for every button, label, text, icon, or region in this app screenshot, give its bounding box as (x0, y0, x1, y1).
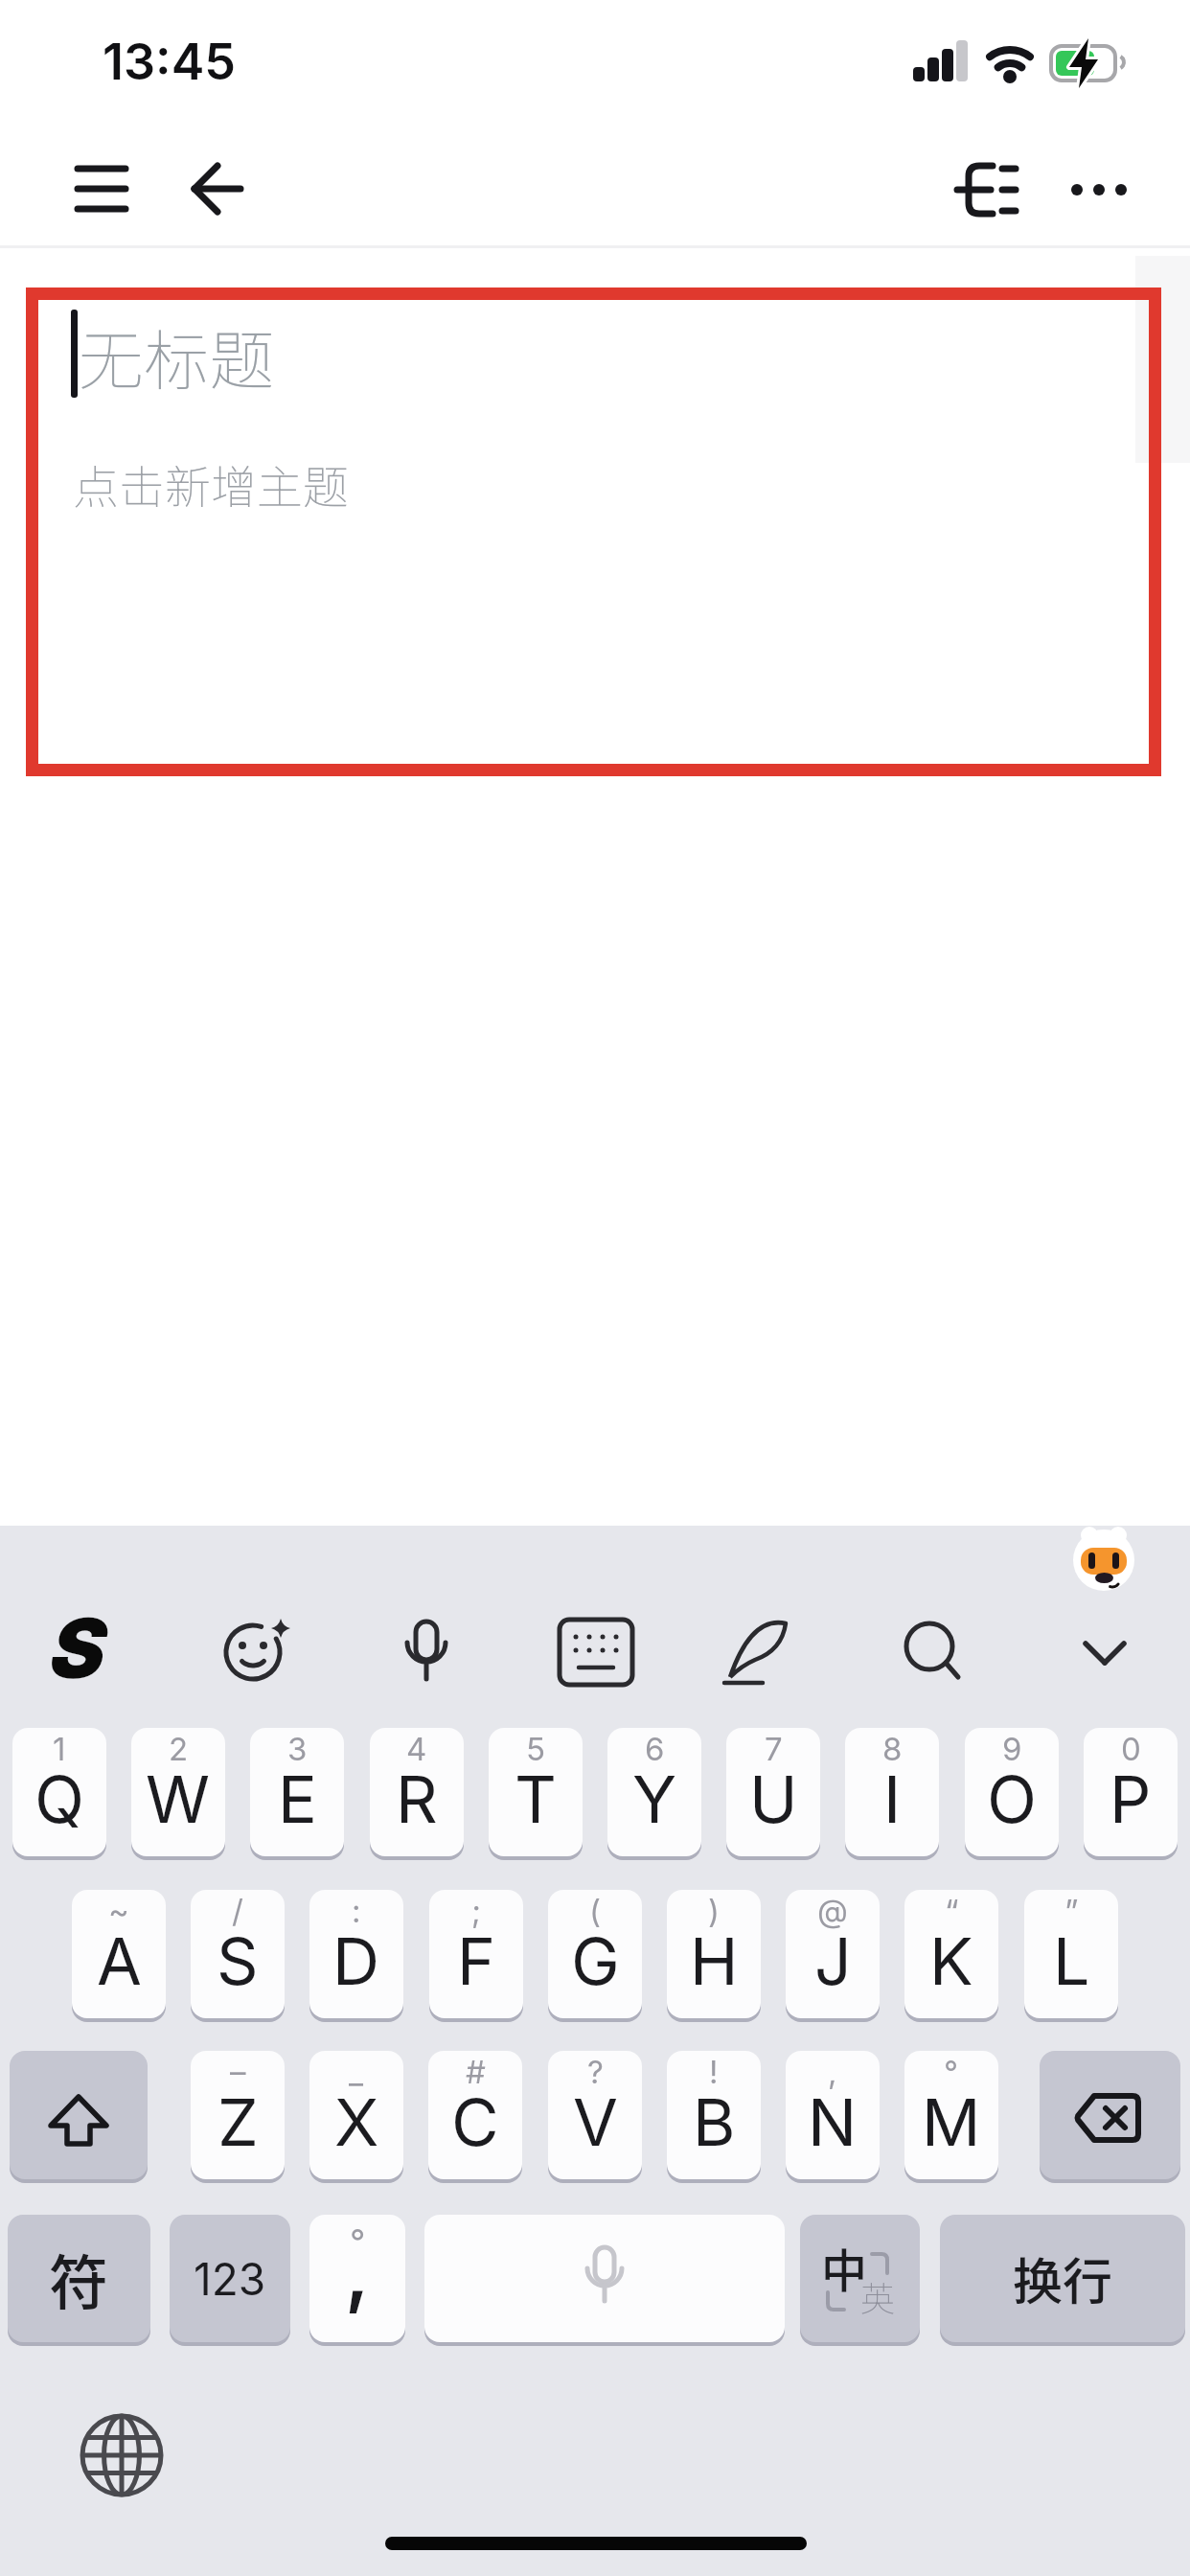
staticText: 8 (882, 1730, 903, 1768)
staticText: U (749, 1759, 798, 1838)
button[interactable]: ? (548, 2051, 642, 2179)
staticText: Q (34, 1759, 84, 1838)
staticText: X (334, 2082, 379, 2161)
button[interactable]: 7 (726, 1728, 820, 1856)
button[interactable] (79, 2412, 165, 2498)
staticText: S (217, 1921, 259, 2000)
staticText: N (808, 2082, 858, 2161)
staticText: F (457, 1921, 496, 2000)
button[interactable] (553, 1609, 639, 1695)
button[interactable]: ! (667, 2051, 761, 2179)
staticText: 9 (1002, 1730, 1022, 1768)
button[interactable]: # (428, 2051, 522, 2179)
button[interactable]: : (309, 1890, 403, 2018)
staticText: , (828, 2053, 837, 2091)
staticText: T (515, 1759, 557, 1838)
staticText: 1 (53, 1730, 66, 1768)
staticText: K (929, 1921, 973, 2000)
button[interactable]: ( (548, 1890, 642, 2018)
button[interactable] (1062, 1609, 1148, 1695)
staticText: ” (1064, 1892, 1079, 1930)
button[interactable] (172, 149, 261, 235)
button[interactable] (892, 1609, 978, 1695)
staticText: M (922, 2082, 981, 2161)
button[interactable]: ; (429, 1890, 523, 2018)
staticText: Z (217, 2082, 259, 2161)
button[interactable]: 换行 (940, 2215, 1185, 2342)
button[interactable]: 8 (845, 1728, 939, 1856)
staticText: R (396, 1759, 438, 1838)
button[interactable] (57, 149, 146, 235)
button[interactable]: 2 (131, 1728, 225, 1856)
staticText: ; (471, 1892, 481, 1930)
button[interactable]: ° (309, 2215, 405, 2342)
staticText: “ (945, 1892, 959, 1930)
staticText: : (352, 1892, 361, 1930)
staticText: D (332, 1921, 380, 2000)
staticText: ! (709, 2053, 719, 2091)
button[interactable]: @ (786, 1890, 880, 2018)
staticText: 123 (194, 2252, 266, 2306)
button[interactable] (44, 1609, 130, 1695)
staticText: ° (944, 2053, 959, 2091)
button[interactable]: _ (309, 2051, 403, 2179)
button[interactable]: 9 (965, 1728, 1059, 1856)
button[interactable]: 符 (8, 2215, 150, 2342)
button[interactable]: – (191, 2051, 285, 2179)
staticText: ~ (108, 1892, 129, 1930)
staticText: / (232, 1892, 243, 1930)
button[interactable] (424, 2215, 785, 2342)
staticText: – (230, 2053, 246, 2091)
button[interactable]: / (191, 1890, 285, 2018)
button[interactable] (1059, 144, 1145, 235)
button[interactable]: 4 (370, 1728, 464, 1856)
button[interactable] (722, 1609, 809, 1695)
button[interactable]: 3 (250, 1728, 344, 1856)
staticText: 符 (49, 2236, 109, 2322)
staticText: L (1053, 1921, 1090, 2000)
button[interactable] (1040, 2051, 1180, 2179)
button[interactable]: ~ (72, 1890, 166, 2018)
staticText: C (451, 2082, 499, 2161)
staticText: B (693, 2082, 736, 2161)
staticText: G (571, 1921, 620, 2000)
staticText: 英 (860, 2271, 896, 2321)
staticText: E (278, 1759, 317, 1838)
staticText: 中 (821, 2234, 868, 2301)
staticText: ( (589, 1892, 602, 1930)
button[interactable]: 无标题 (26, 287, 1161, 776)
button[interactable]: “ (904, 1890, 998, 2018)
staticText: 5 (526, 1730, 546, 1768)
button[interactable]: 5 (489, 1728, 583, 1856)
button[interactable] (214, 1609, 300, 1695)
staticText: 4 (406, 1730, 427, 1768)
staticText: _ (349, 2053, 364, 2091)
button[interactable]: 1 (12, 1728, 106, 1856)
staticText: 3 (287, 1730, 308, 1768)
staticText: A (97, 1921, 142, 2000)
button[interactable]: 6 (607, 1728, 701, 1856)
staticText: 点击新增主题 (73, 450, 350, 517)
staticText: I (883, 1759, 902, 1838)
button[interactable]: ) (667, 1890, 761, 2018)
button[interactable] (944, 144, 1035, 235)
button[interactable] (383, 1609, 469, 1695)
staticText: , (345, 2224, 370, 2317)
staticText: 0 (1121, 1730, 1141, 1768)
button[interactable]: ” (1024, 1890, 1118, 2018)
button[interactable]: ° (904, 2051, 998, 2179)
staticText: 7 (765, 1730, 783, 1768)
button[interactable]: 0 (1084, 1728, 1178, 1856)
button[interactable]: 中 (800, 2215, 920, 2342)
staticText: V (573, 2082, 618, 2161)
button[interactable] (10, 2051, 148, 2179)
staticText: ) (708, 1892, 721, 1930)
button[interactable]: 123 (170, 2215, 290, 2342)
button[interactable]: , (786, 2051, 880, 2179)
staticText: 换行 (1013, 2242, 1113, 2314)
staticText: S (45, 1598, 101, 1698)
staticText: H (690, 1921, 739, 2000)
staticText: 6 (645, 1730, 665, 1768)
staticText: J (814, 1921, 852, 2000)
staticText: P (1110, 1759, 1152, 1838)
